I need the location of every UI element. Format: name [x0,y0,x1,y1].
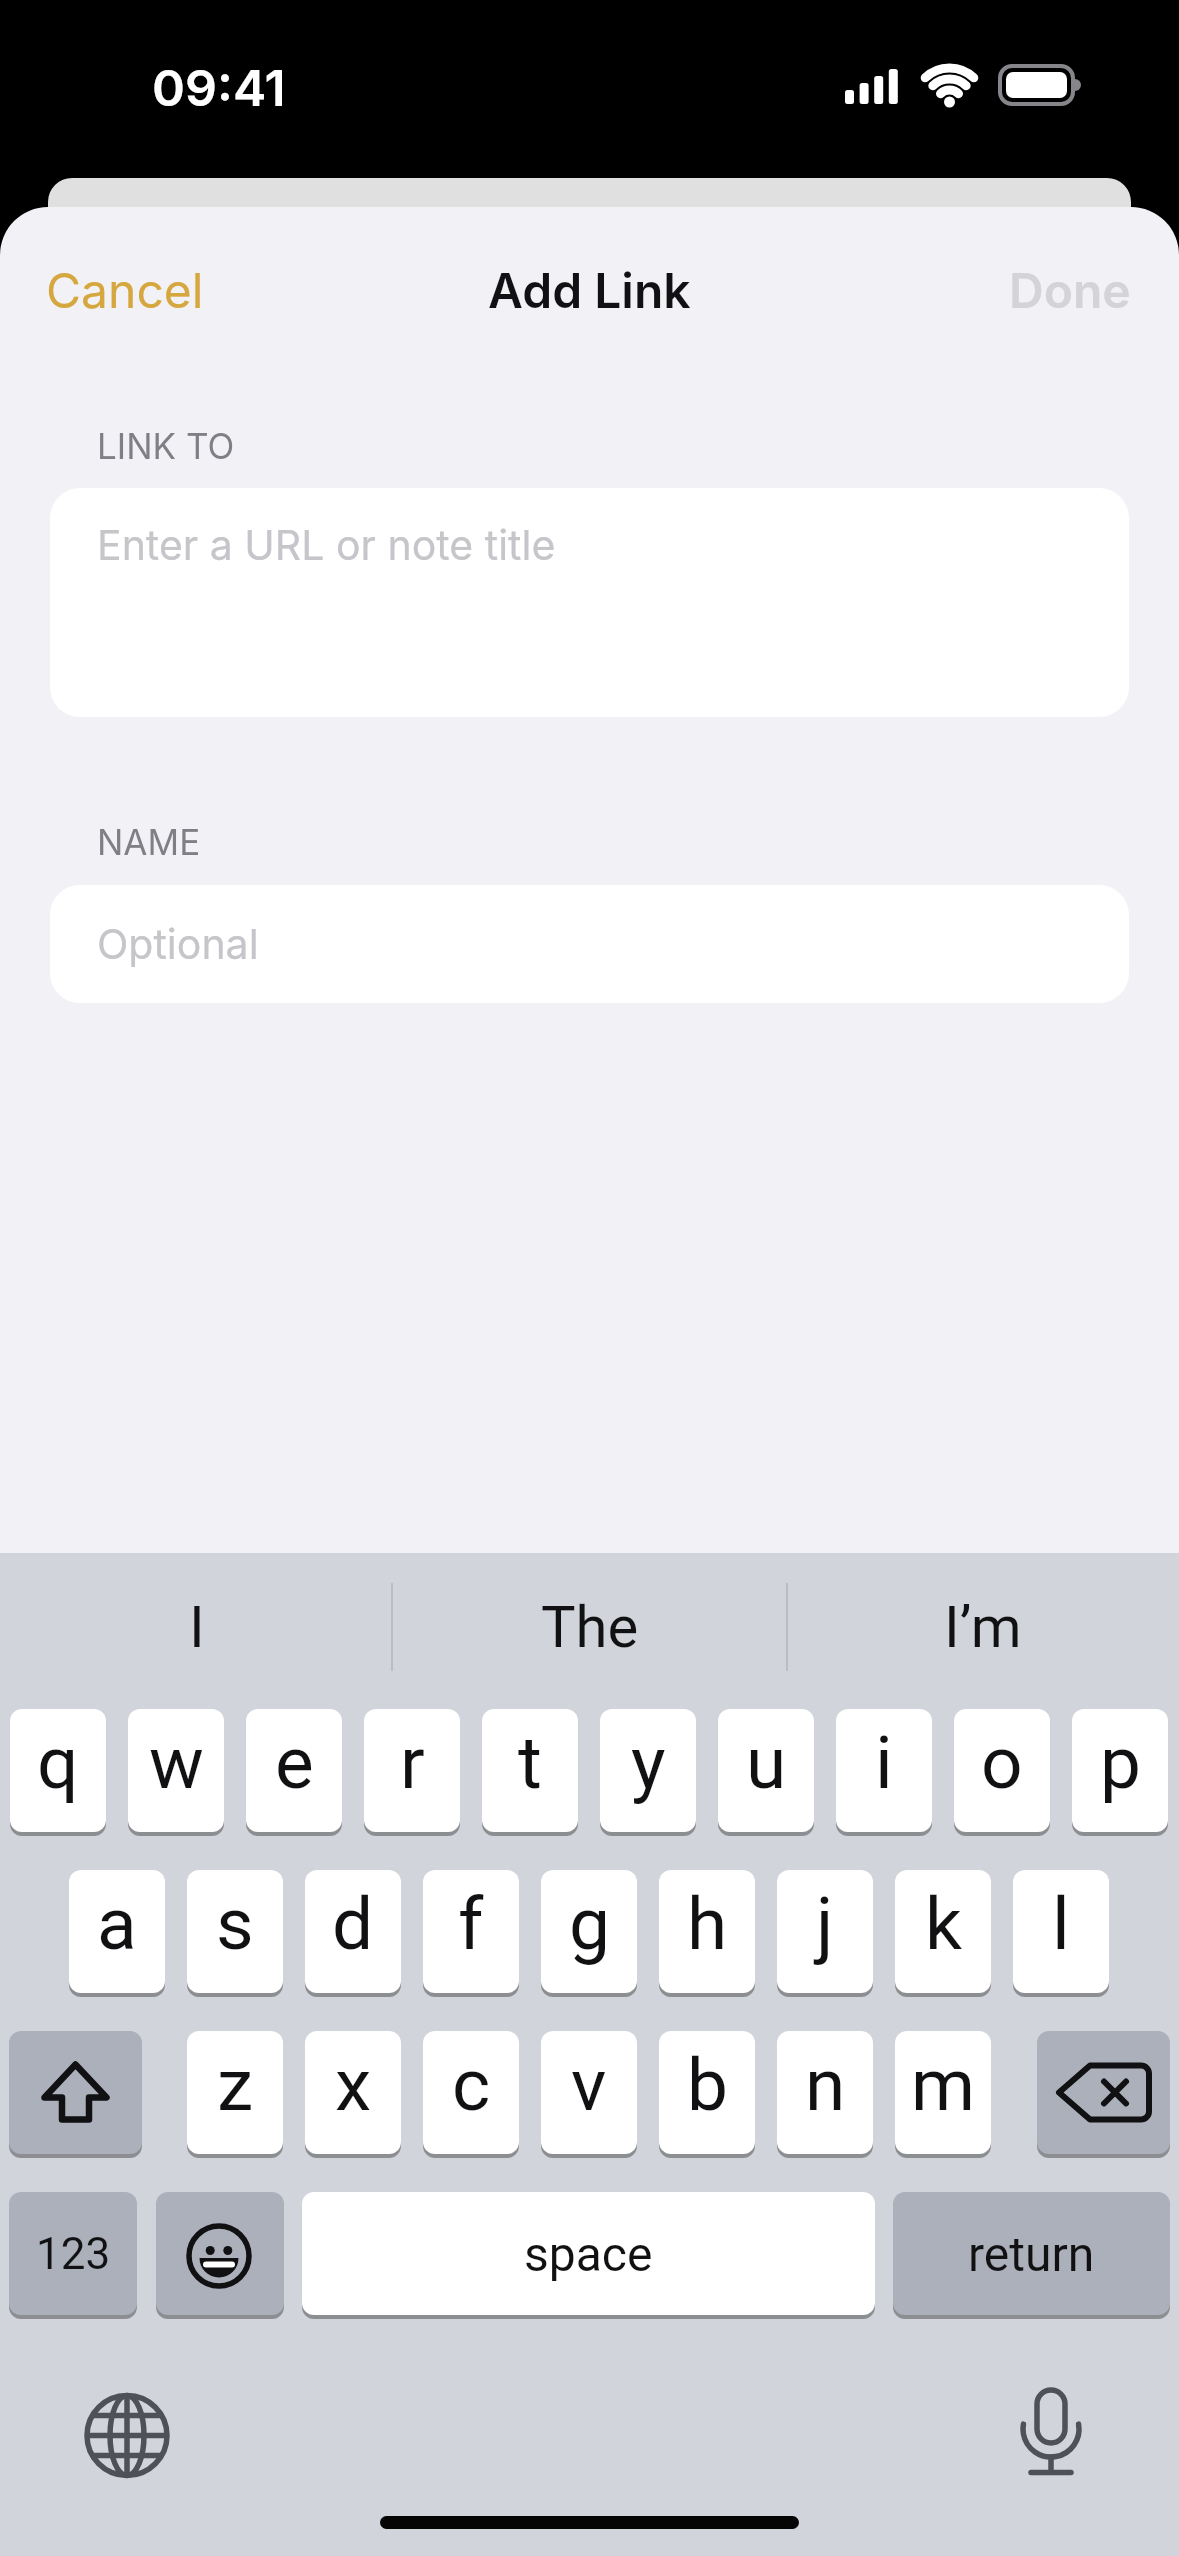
staticText: z [217,2042,254,2128]
staticText: k [925,1881,962,1967]
staticText: i [875,1720,893,1806]
staticText: g [569,1881,610,1967]
staticText: I [189,1593,205,1661]
button[interactable]: u [718,1709,814,1832]
button[interactable]: s [187,1870,283,1993]
staticText: s [216,1881,254,1967]
button[interactable]: n [777,2031,873,2154]
staticText: I’m [944,1593,1022,1661]
button[interactable]: l [1013,1870,1109,1993]
staticText: Add Link [488,261,691,319]
button[interactable]: I [0,1589,393,1665]
staticText: w [149,1720,204,1806]
button[interactable]: The [393,1589,786,1665]
button[interactable] [68,2375,188,2495]
button[interactable]: f [423,1870,519,1993]
staticText: c [452,2042,491,2128]
staticText: 123 [36,2228,111,2280]
staticText: f [458,1881,484,1967]
staticText: j [816,1881,834,1967]
staticText: The [541,1593,639,1661]
staticText: space [524,2226,653,2282]
button[interactable]: r [364,1709,460,1832]
staticText: o [981,1720,1023,1806]
staticText: p [1100,1720,1141,1806]
staticText: Done [1009,261,1131,319]
staticText: y [631,1720,666,1806]
button[interactable]: I’m [786,1589,1179,1665]
staticText: Cancel [46,261,204,319]
button[interactable]: c [423,2031,519,2154]
button[interactable]: y [600,1709,696,1832]
staticText: u [746,1720,787,1806]
staticText: NAME [97,821,201,863]
button[interactable]: Enter a URL or note title [50,488,1129,717]
button[interactable]: b [659,2031,755,2154]
staticText: q [37,1720,79,1806]
button[interactable]: m [895,2031,991,2154]
button[interactable]: k [895,1870,991,1993]
button[interactable]: Done [1009,261,1131,319]
staticText: t [518,1720,542,1806]
staticText: return [968,2226,1095,2282]
button[interactable] [992,2375,1112,2495]
button[interactable]: o [954,1709,1050,1832]
button[interactable]: i [836,1709,932,1832]
staticText: m [911,2042,976,2128]
staticText: d [332,1881,374,1967]
staticText: r [400,1720,425,1806]
button[interactable] [9,2031,142,2154]
button[interactable]: x [305,2031,401,2154]
staticText: l [1052,1881,1070,1967]
button[interactable]: v [541,2031,637,2154]
staticText: e [275,1720,314,1806]
button[interactable]: d [305,1870,401,1993]
button[interactable]: p [1072,1709,1168,1832]
staticText: a [97,1881,137,1967]
staticText: 09:41 [152,58,286,118]
staticText: x [335,2042,372,2128]
button[interactable]: q [10,1709,106,1832]
staticText: Optional [97,919,259,969]
button[interactable]: Cancel [46,261,204,319]
staticText: Enter a URL or note title [97,520,556,570]
button[interactable]: e [246,1709,342,1832]
button[interactable]: Optional [50,885,1129,1003]
button[interactable]: z [187,2031,283,2154]
button[interactable]: j [777,1870,873,1993]
button[interactable]: space [302,2192,875,2315]
staticText: b [687,2042,728,2128]
button[interactable]: w [128,1709,224,1832]
staticText: v [571,2042,607,2128]
button[interactable]: h [659,1870,755,1993]
button[interactable]: a [69,1870,165,1993]
button[interactable]: return [893,2192,1170,2315]
button[interactable]: 123 [9,2192,137,2315]
staticText: h [687,1881,728,1967]
staticText: n [805,2042,846,2128]
staticText: LINK TO [97,425,235,467]
button[interactable] [156,2192,284,2315]
button[interactable]: t [482,1709,578,1832]
button[interactable]: g [541,1870,637,1993]
button[interactable] [1037,2031,1170,2154]
